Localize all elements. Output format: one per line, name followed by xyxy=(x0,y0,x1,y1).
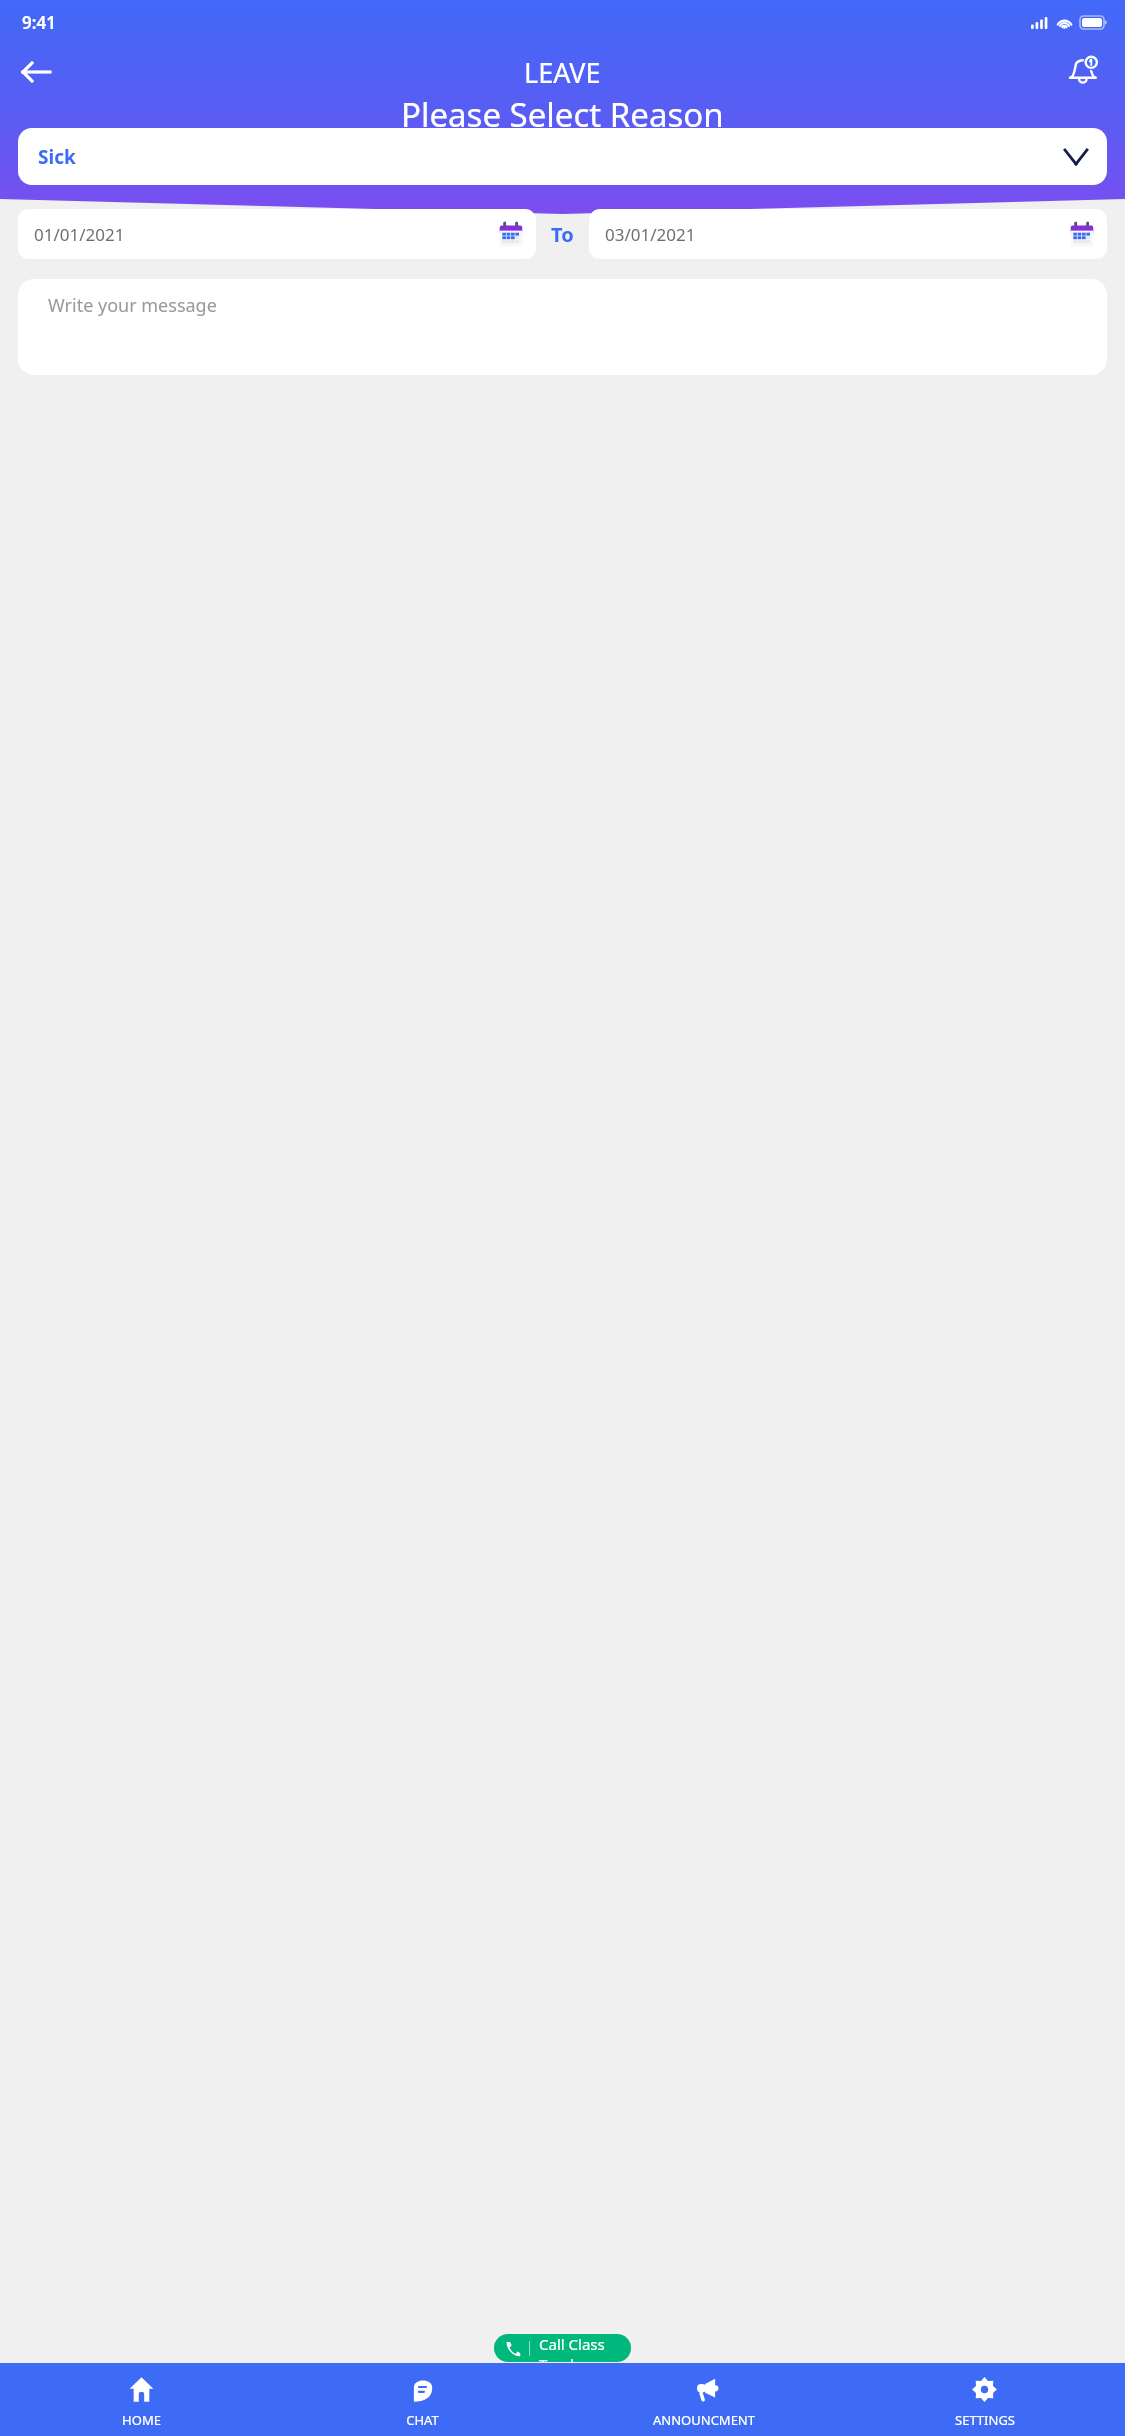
staticText: Sick xyxy=(38,144,76,170)
staticText: Please Select Reason xyxy=(401,92,724,137)
button[interactable]: Back xyxy=(8,44,64,100)
button[interactable]: 03/01/2021 xyxy=(589,209,1107,259)
button[interactable]: 01/01/2021 xyxy=(18,209,536,259)
staticText: ANNOUNCMENT xyxy=(653,2411,755,2429)
button[interactable]: Sick xyxy=(18,128,1107,185)
staticText: Write your message xyxy=(48,293,217,318)
button[interactable]: Notifications xyxy=(1059,46,1111,98)
button[interactable]: ANNOUNCMENT xyxy=(563,2363,844,2436)
button[interactable]: Call Class Teacher xyxy=(494,2334,631,2362)
button[interactable]: HOME xyxy=(0,2363,282,2436)
staticText: 01/01/2021 xyxy=(34,223,125,246)
staticText: 03/01/2021 xyxy=(605,223,696,246)
button[interactable]: CHAT xyxy=(282,2363,563,2436)
staticText: Call Class Teacher xyxy=(539,2334,631,2362)
staticText: SETTINGS xyxy=(955,2411,1015,2429)
staticText: CHAT xyxy=(406,2411,439,2429)
button[interactable]: Write your message xyxy=(18,279,1107,375)
staticText: HOME xyxy=(122,2411,161,2429)
staticText: 9:41 xyxy=(22,11,56,34)
staticText: LEAVE xyxy=(524,54,601,91)
button[interactable]: SETTINGS xyxy=(844,2363,1125,2436)
staticText: To xyxy=(551,221,574,248)
